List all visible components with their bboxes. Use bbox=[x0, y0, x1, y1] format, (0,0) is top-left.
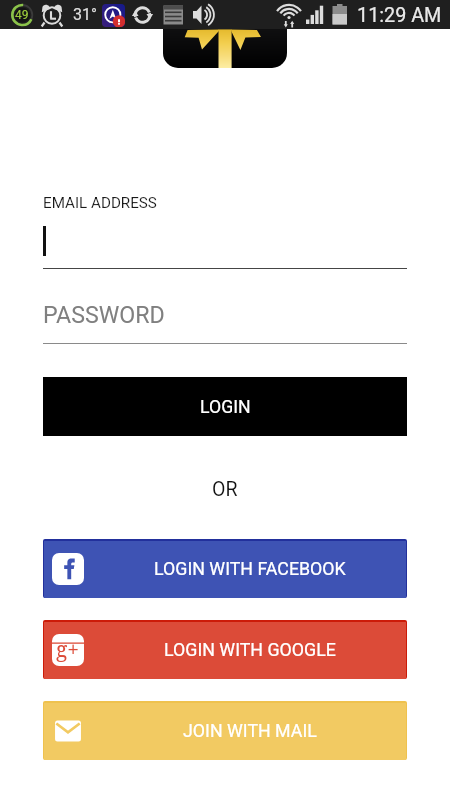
staticText: LOGIN bbox=[200, 397, 251, 418]
button[interactable]: LOGIN bbox=[43, 377, 407, 436]
staticText: g+ bbox=[56, 635, 80, 664]
staticText: PASSWORD bbox=[43, 301, 165, 328]
staticText: EMAIL ADDRESS bbox=[43, 194, 157, 212]
button[interactable]: Login with Facebook bbox=[44, 541, 406, 598]
button[interactable]: Join with mail bbox=[44, 703, 406, 760]
staticText: LOGIN WITH FACEBOOK bbox=[154, 558, 346, 579]
staticText: 11:29 AM bbox=[357, 4, 442, 27]
staticText: JOIN WITH MAIL bbox=[183, 720, 317, 741]
button[interactable]: Login with Google bbox=[44, 622, 406, 679]
staticText: LOGIN WITH GOOGLE bbox=[164, 639, 336, 660]
staticText: 31° bbox=[73, 5, 97, 24]
staticText: 49 bbox=[15, 8, 29, 22]
staticText: OR bbox=[212, 478, 238, 501]
